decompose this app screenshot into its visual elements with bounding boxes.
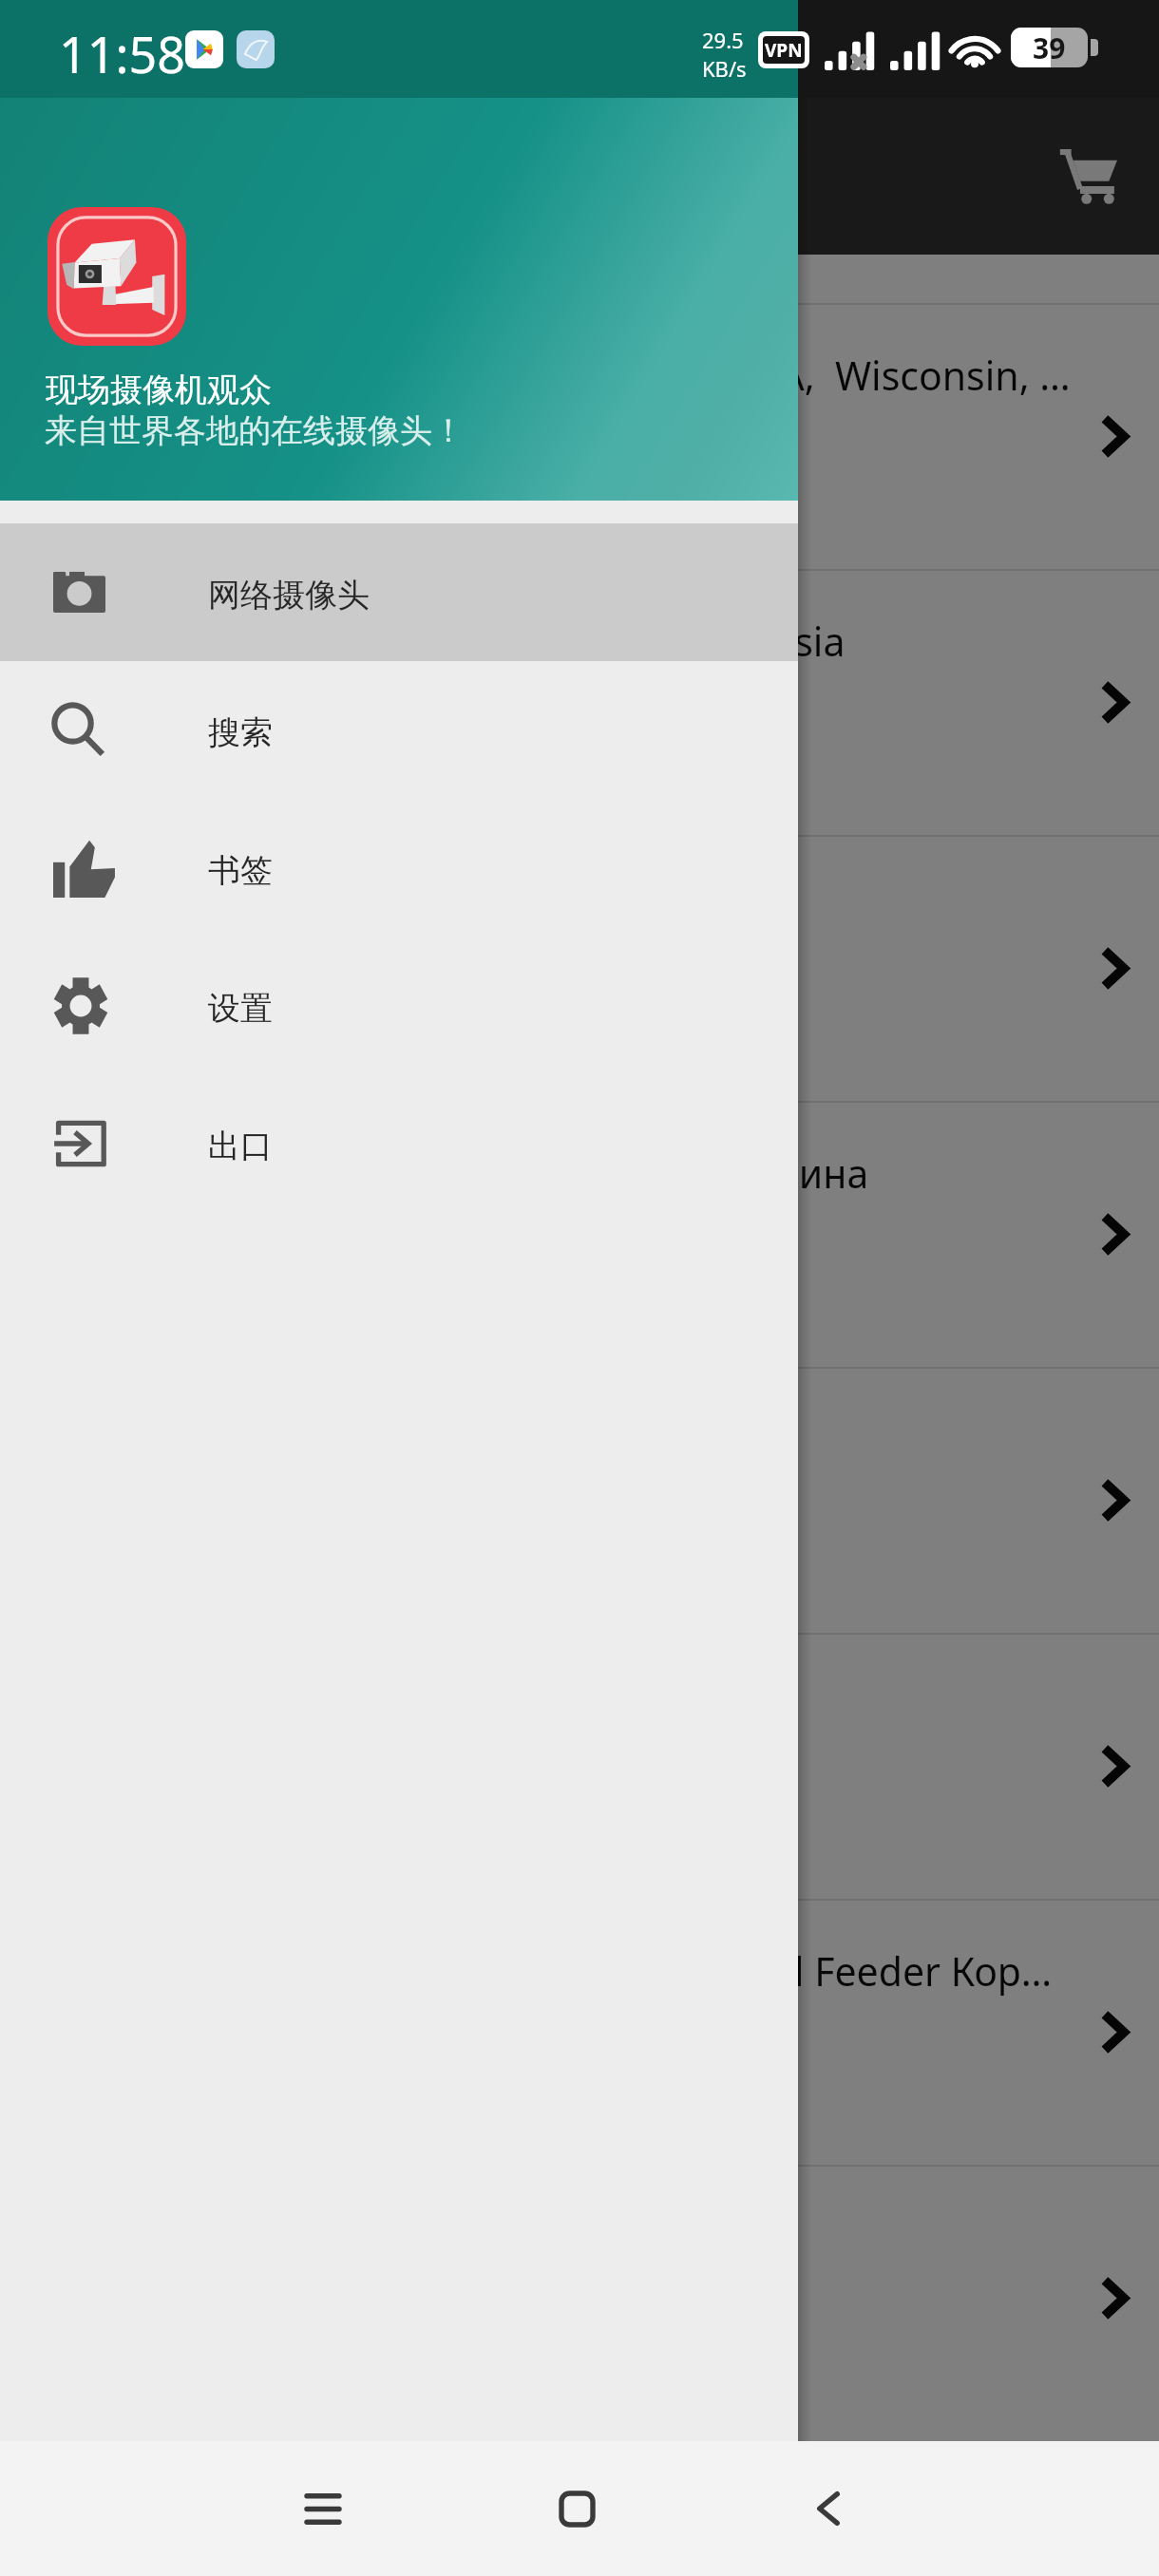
staticText: Live webcam online in Germany Berlin (55, 1678, 1075, 1732)
staticText: 39 (1033, 28, 1066, 67)
staticText: KB/s (702, 54, 747, 83)
button[interactable]: Live webcam online in Italy Roma (0, 2165, 1159, 2431)
staticText: VPN (765, 38, 803, 63)
button[interactable]: Live webcam online in the big city of Ru… (0, 569, 1159, 835)
button[interactable]: 设置 (0, 937, 798, 1074)
staticText: Live webcam online in the city of the US… (55, 349, 1075, 402)
button[interactable]: Веб камера онлайн в городе Киев Украина (0, 1101, 1159, 1367)
button[interactable]: Live webcam online in the city of the Bi… (0, 1899, 1159, 2165)
staticText: 来自世界各地的在线摄像头！ (45, 410, 465, 451)
button[interactable]: Back (762, 2441, 895, 2576)
button[interactable]: Recents (256, 2441, 389, 2576)
staticText: 搜索 (208, 712, 273, 753)
staticText: Live webcam online in the big city of Ru… (55, 615, 1075, 668)
staticText: 设置 (208, 988, 273, 1029)
button[interactable]: Home (510, 2441, 643, 2576)
button[interactable]: Live webcam online in the city of the US… (0, 303, 1159, 569)
staticText: 现场摄像机观众 (46, 369, 272, 410)
button[interactable]: 书签 (0, 799, 798, 937)
staticText: 29.5 (702, 26, 744, 54)
staticText: 出口 (208, 1126, 273, 1166)
staticText: Live webcam online in Switzerland (55, 881, 1075, 934)
button[interactable]: 出口 (0, 1074, 798, 1212)
button[interactable]: Cart (1045, 133, 1130, 218)
button[interactable]: Live webcam online in Switzerland (0, 835, 1159, 1101)
button[interactable]: 搜索 (0, 661, 798, 799)
button[interactable]: Live webcam online in Germany Berlin (0, 1633, 1159, 1899)
staticText: Live webcam online in Canada Ontario (55, 1412, 1075, 1466)
button[interactable]: Live webcam online in Canada Ontario (0, 1367, 1159, 1633)
staticText: Live webcam online in the city of the Bi… (55, 1944, 1075, 1998)
button[interactable]: 网络摄像头 (0, 523, 798, 661)
staticText: 网络摄像头 (208, 575, 370, 616)
staticText: 11:58 (59, 20, 185, 87)
staticText: 书签 (208, 850, 273, 891)
staticText: Веб камера онлайн в городе Киев Украина (55, 1146, 1075, 1200)
staticText: Live webcam online in Italy Roma (55, 2210, 1075, 2263)
